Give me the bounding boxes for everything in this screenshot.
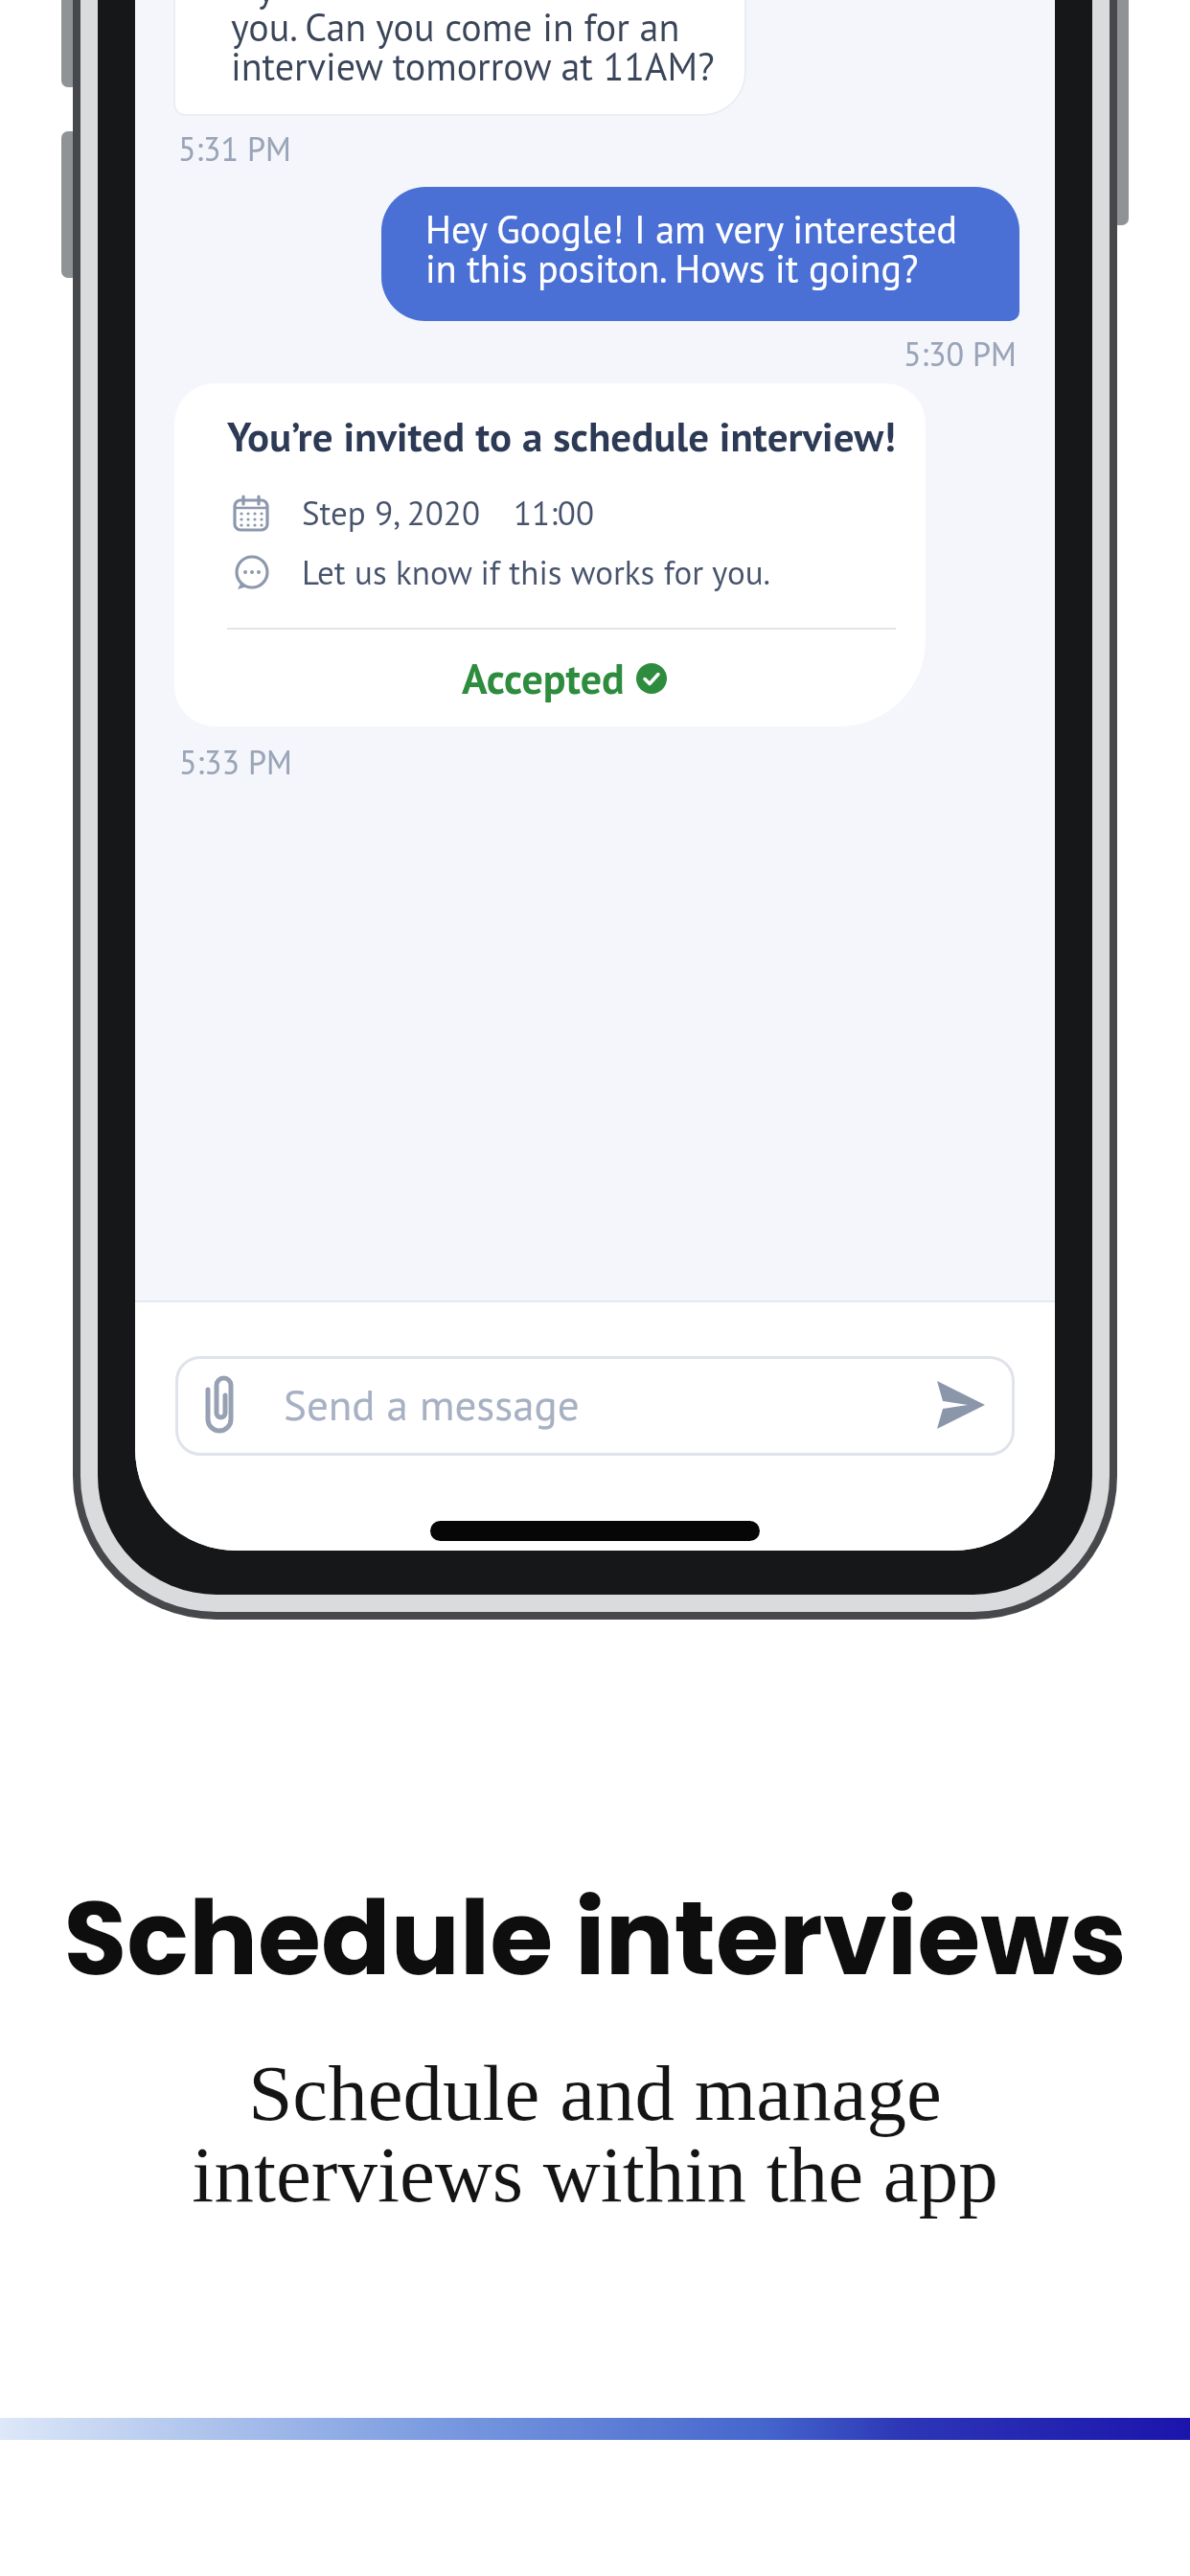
staticText: Schedule interviews	[0, 1867, 1190, 2011]
button[interactable]: You’re invited to a schedule interview!	[174, 383, 926, 726]
staticText: Hey Google! I am very interested	[425, 204, 958, 254]
staticText: Schedule and manage	[0, 2049, 1190, 2137]
staticText: Accepted	[462, 651, 625, 705]
staticText: in this positon. Hows it going?	[425, 243, 919, 293]
staticText: Send a message	[284, 1376, 580, 1432]
staticText: Let us know if this works for you.	[302, 550, 771, 593]
staticText: you. Can you come in for an	[231, 2, 680, 52]
staticText: interview tomorrow at 11AM?	[231, 41, 715, 91]
button[interactable]	[175, 1356, 1015, 1456]
staticText: interviews within the app	[0, 2130, 1190, 2219]
staticText: 5:33 PM	[179, 741, 293, 783]
button[interactable]	[381, 187, 1019, 321]
button[interactable]: Accepted	[189, 651, 940, 705]
staticText: y	[257, 0, 275, 12]
staticText: 5:30 PM	[904, 333, 1018, 375]
staticText: 5:31 PM	[178, 127, 292, 170]
staticText: 11:00	[514, 491, 594, 534]
staticText: Step 9, 2020	[302, 491, 480, 534]
staticText: You’re invited to a schedule interview!	[227, 409, 896, 463]
button[interactable]	[935, 1377, 987, 1433]
